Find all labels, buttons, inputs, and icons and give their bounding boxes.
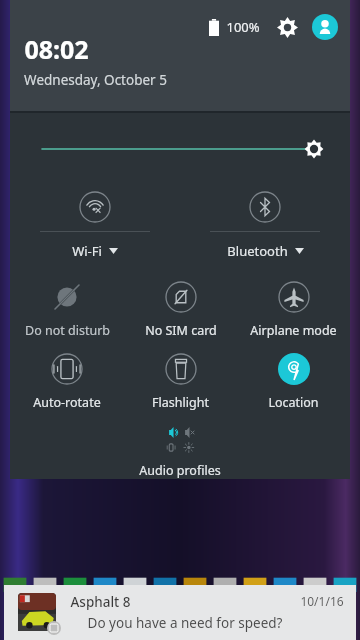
staticText: Flashlight	[152, 394, 209, 411]
staticText: Wi-Fi	[72, 242, 102, 260]
staticText: Location	[268, 394, 319, 411]
button[interactable]: Flashlight	[124, 353, 237, 411]
staticText: Bluetooth	[227, 242, 288, 260]
button[interactable]: Audio profiles	[10, 425, 350, 479]
staticText: Do you have a need for speed? Come tear.…	[70, 614, 300, 632]
staticText: No SIM card	[145, 322, 217, 339]
staticText: Asphalt 8	[70, 593, 131, 611]
staticText: 100%	[226, 18, 260, 36]
staticText: Do not disturb	[25, 322, 110, 339]
button[interactable]: Location	[237, 353, 350, 411]
button[interactable]: Wi-Fi	[10, 185, 180, 269]
button[interactable]: Auto-rotate	[10, 353, 124, 411]
button[interactable]: Settings	[274, 14, 300, 40]
staticText: Wednesday, October 5	[24, 71, 167, 89]
staticText: Auto-rotate	[33, 394, 101, 411]
staticText: Airplane mode	[250, 322, 337, 339]
staticText: 08:02	[24, 32, 89, 66]
button[interactable]: Asphalt 8	[4, 585, 356, 640]
button[interactable]: User profile	[312, 14, 338, 40]
staticText: Audio profiles	[139, 462, 221, 479]
staticText: 10/1/16	[300, 593, 344, 609]
button[interactable]: Brightness	[10, 113, 350, 185]
button[interactable]: Bluetooth	[180, 185, 350, 269]
button[interactable]: Airplane mode	[237, 281, 350, 339]
button[interactable]: No SIM card	[124, 281, 237, 339]
button[interactable]: Do not disturb	[10, 281, 124, 339]
